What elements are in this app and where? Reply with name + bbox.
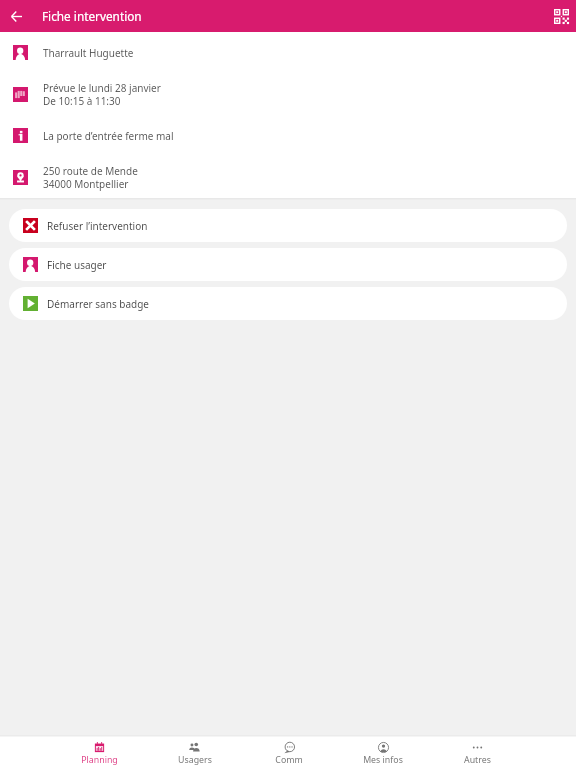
staticText: Prévue le lundi 28 janvier: [43, 81, 161, 95]
button[interactable]: 250 route de Mende: [0, 157, 576, 199]
staticText: Tharrault Huguette: [43, 46, 134, 60]
button[interactable]: Tharrault Huguette: [0, 32, 576, 74]
button[interactable]: Démarrer sans badge: [9, 287, 567, 320]
staticText: Démarrer sans badge: [47, 297, 149, 311]
button[interactable]: La porte d’entrée ferme mal: [0, 115, 576, 157]
button[interactable]: Usagers: [147, 735, 242, 768]
staticText: Planning: [81, 754, 118, 766]
button[interactable]: Autres: [430, 735, 524, 768]
staticText: Refuser l’intervention: [47, 219, 148, 233]
staticText: De 10:15 à 11:30: [43, 94, 121, 108]
button[interactable]: Mes infos: [336, 735, 430, 768]
button[interactable]: Prévue le lundi 28 janvier: [0, 74, 576, 116]
staticText: Fiche intervention: [42, 8, 142, 24]
button[interactable]: Scan QR code: [552, 7, 571, 26]
staticText: 250 route de Mende: [43, 164, 138, 178]
staticText: Usagers: [178, 754, 212, 766]
staticText: Comm: [275, 754, 303, 766]
staticText: Mes infos: [363, 754, 403, 766]
button[interactable]: Refuser l’intervention: [9, 209, 567, 242]
button[interactable]: Planning: [52, 735, 147, 768]
button[interactable]: Back: [4, 4, 28, 28]
button[interactable]: Fiche usager: [9, 248, 567, 281]
button[interactable]: Comm: [242, 735, 336, 768]
staticText: 34000 Montpellier: [43, 177, 129, 191]
staticText: Fiche usager: [47, 258, 107, 272]
staticText: Autres: [464, 754, 491, 766]
staticText: La porte d’entrée ferme mal: [43, 129, 174, 143]
